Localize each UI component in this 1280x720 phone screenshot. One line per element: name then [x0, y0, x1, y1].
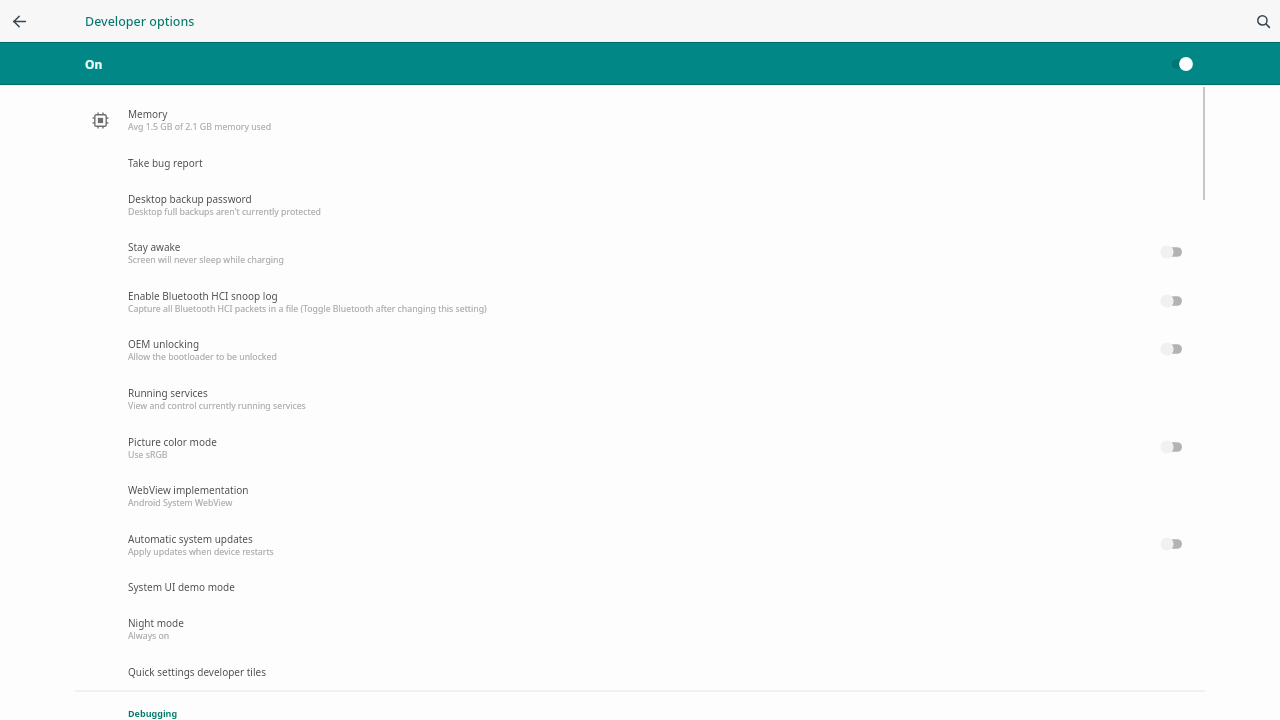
staticText: Picture color mode — [128, 435, 217, 449]
staticText: Enable Bluetooth HCI snoop log — [128, 289, 278, 303]
button[interactable]: Memory — [0, 105, 1280, 154]
button[interactable]: Running services — [0, 384, 1280, 433]
button[interactable]: Navigate up — [7, 9, 31, 33]
staticText: Stay awake — [128, 240, 181, 254]
button[interactable]: Enable Bluetooth HCI snoop log — [0, 287, 1280, 336]
staticText: Apply updates when device restarts — [128, 546, 274, 558]
staticText: Desktop full backups aren't currently pr… — [128, 206, 321, 218]
staticText: Android System WebView — [128, 497, 233, 509]
staticText: Desktop backup password — [128, 192, 252, 206]
button[interactable]: System UI demo mode — [0, 578, 1280, 614]
staticText: Avg 1.5 GB of 2.1 GB memory used — [128, 121, 272, 133]
button[interactable]: OEM unlocking — [0, 335, 1280, 384]
button[interactable]: Desktop backup password — [0, 190, 1280, 239]
button[interactable]: Picture color mode — [0, 433, 1280, 482]
staticText: Screen will never sleep while charging — [128, 254, 284, 266]
staticText: Use sRGB — [128, 449, 168, 461]
staticText: On — [85, 56, 103, 72]
button[interactable]: On — [0, 42, 1280, 85]
button[interactable]: Stay awake — [0, 238, 1280, 287]
button[interactable]: Night mode — [0, 614, 1280, 663]
staticText: WebView implementation — [128, 483, 249, 497]
button[interactable]: Stay awake — [1160, 242, 1186, 262]
button[interactable]: Take bug report — [0, 154, 1280, 190]
button[interactable]: OEM unlocking — [1160, 339, 1186, 359]
staticText: System UI demo mode — [128, 580, 235, 594]
button[interactable]: Quick settings developer tiles — [0, 663, 1280, 699]
staticText: View and control currently running servi… — [128, 400, 306, 412]
staticText: Debugging — [128, 707, 178, 719]
staticText: Night mode — [128, 616, 184, 630]
button[interactable]: Automatic system updates — [1160, 534, 1186, 554]
staticText: Allow the bootloader to be unlocked — [128, 351, 277, 363]
button[interactable]: Search — [1253, 11, 1275, 33]
staticText: Quick settings developer tiles — [128, 665, 266, 679]
staticText: OEM unlocking — [128, 337, 200, 351]
staticText: Capture all Bluetooth HCI packets in a f… — [128, 303, 487, 315]
staticText: Always on — [128, 630, 170, 642]
button[interactable]: Automatic system updates — [0, 530, 1280, 579]
staticText: Developer options — [85, 13, 195, 30]
button[interactable]: Picture color mode — [1160, 437, 1186, 457]
button[interactable]: WebView implementation — [0, 481, 1280, 530]
button[interactable]: Enable Bluetooth HCI snoop log — [1160, 291, 1186, 311]
staticText: Automatic system updates — [128, 532, 253, 546]
staticText: Take bug report — [128, 156, 203, 170]
staticText: Memory — [128, 107, 168, 121]
staticText: Running services — [128, 386, 208, 400]
